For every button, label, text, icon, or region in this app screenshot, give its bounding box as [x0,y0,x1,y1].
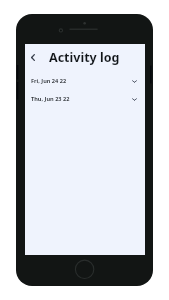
button[interactable]: Fri, Jun 24 22 [25,72,145,90]
staticText: Fri, Jun 24 22 [31,77,67,85]
button[interactable]: Back [25,44,41,70]
button[interactable]: Thu, Jun 23 22 [25,90,145,108]
staticText: Activity log [49,49,120,66]
staticText: Thu, Jun 23 22 [31,95,70,103]
